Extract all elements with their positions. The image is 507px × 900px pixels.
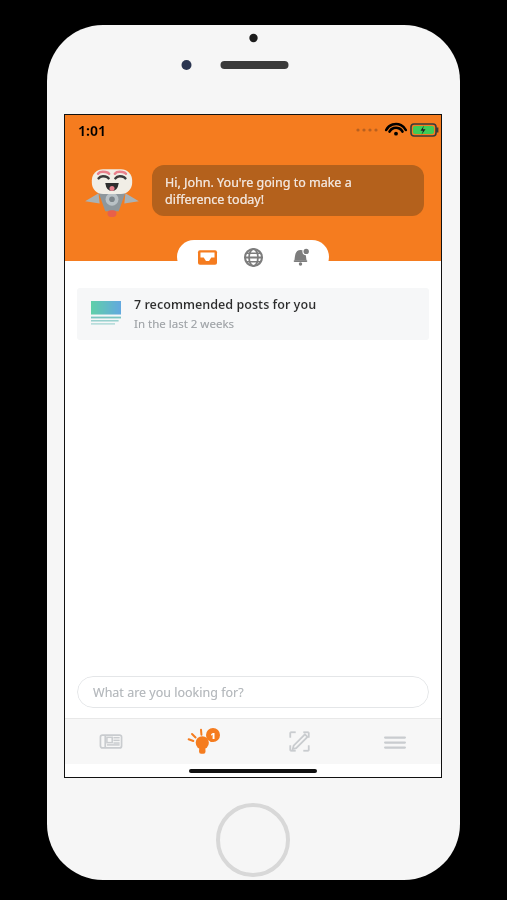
staticText: 1:01 — [78, 121, 106, 140]
button[interactable]: Ideas — [158, 719, 252, 764]
button[interactable]: What are you looking for? — [77, 676, 429, 708]
button[interactable]: Hi, John. You're going to make a differe… — [152, 165, 424, 216]
button[interactable]: News — [64, 719, 158, 764]
staticText: What are you looking for? — [93, 684, 244, 701]
staticText: Hi, John. You're going to make a differe… — [165, 174, 411, 207]
button[interactable]: Compose — [252, 719, 347, 764]
staticText: In the last 2 weeks — [134, 316, 235, 332]
button[interactable]: Inbox — [190, 240, 224, 274]
button[interactable]: Discover — [236, 240, 270, 274]
button[interactable]: Notifications — [283, 240, 317, 274]
staticText: 1 — [210, 729, 216, 741]
button[interactable]: 7 recommended posts for you — [77, 288, 429, 340]
button[interactable]: Menu — [347, 719, 442, 764]
staticText: 7 recommended posts for you — [134, 296, 317, 313]
